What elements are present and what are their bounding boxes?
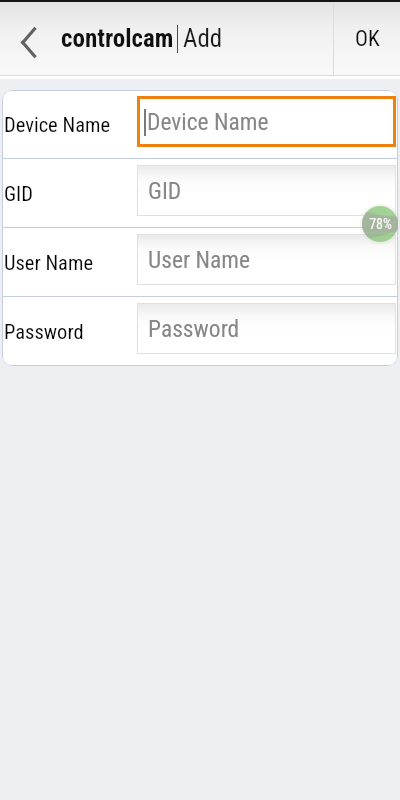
- button[interactable]: GID: [2, 159, 398, 228]
- button[interactable]: Password: [2, 297, 398, 366]
- button[interactable]: User Name: [2, 228, 398, 297]
- staticText: Device Name: [4, 113, 111, 137]
- staticText: User Name: [148, 246, 251, 274]
- staticText: Add: [183, 24, 223, 53]
- staticText: 78%: [369, 216, 392, 232]
- staticText: Device Name: [147, 108, 269, 136]
- staticText: controlcam: [61, 24, 174, 53]
- staticText: GID: [4, 182, 33, 206]
- button[interactable]: Device Name: [2, 90, 398, 159]
- staticText: Password: [4, 320, 84, 344]
- staticText: User Name: [4, 251, 93, 275]
- button[interactable]: Back: [0, 2, 46, 75]
- button[interactable]: OK: [334, 2, 400, 75]
- button[interactable]: Battery 78 percent: [360, 204, 400, 244]
- staticText: GID: [148, 177, 182, 205]
- staticText: OK: [355, 26, 380, 51]
- staticText: Password: [148, 315, 240, 343]
